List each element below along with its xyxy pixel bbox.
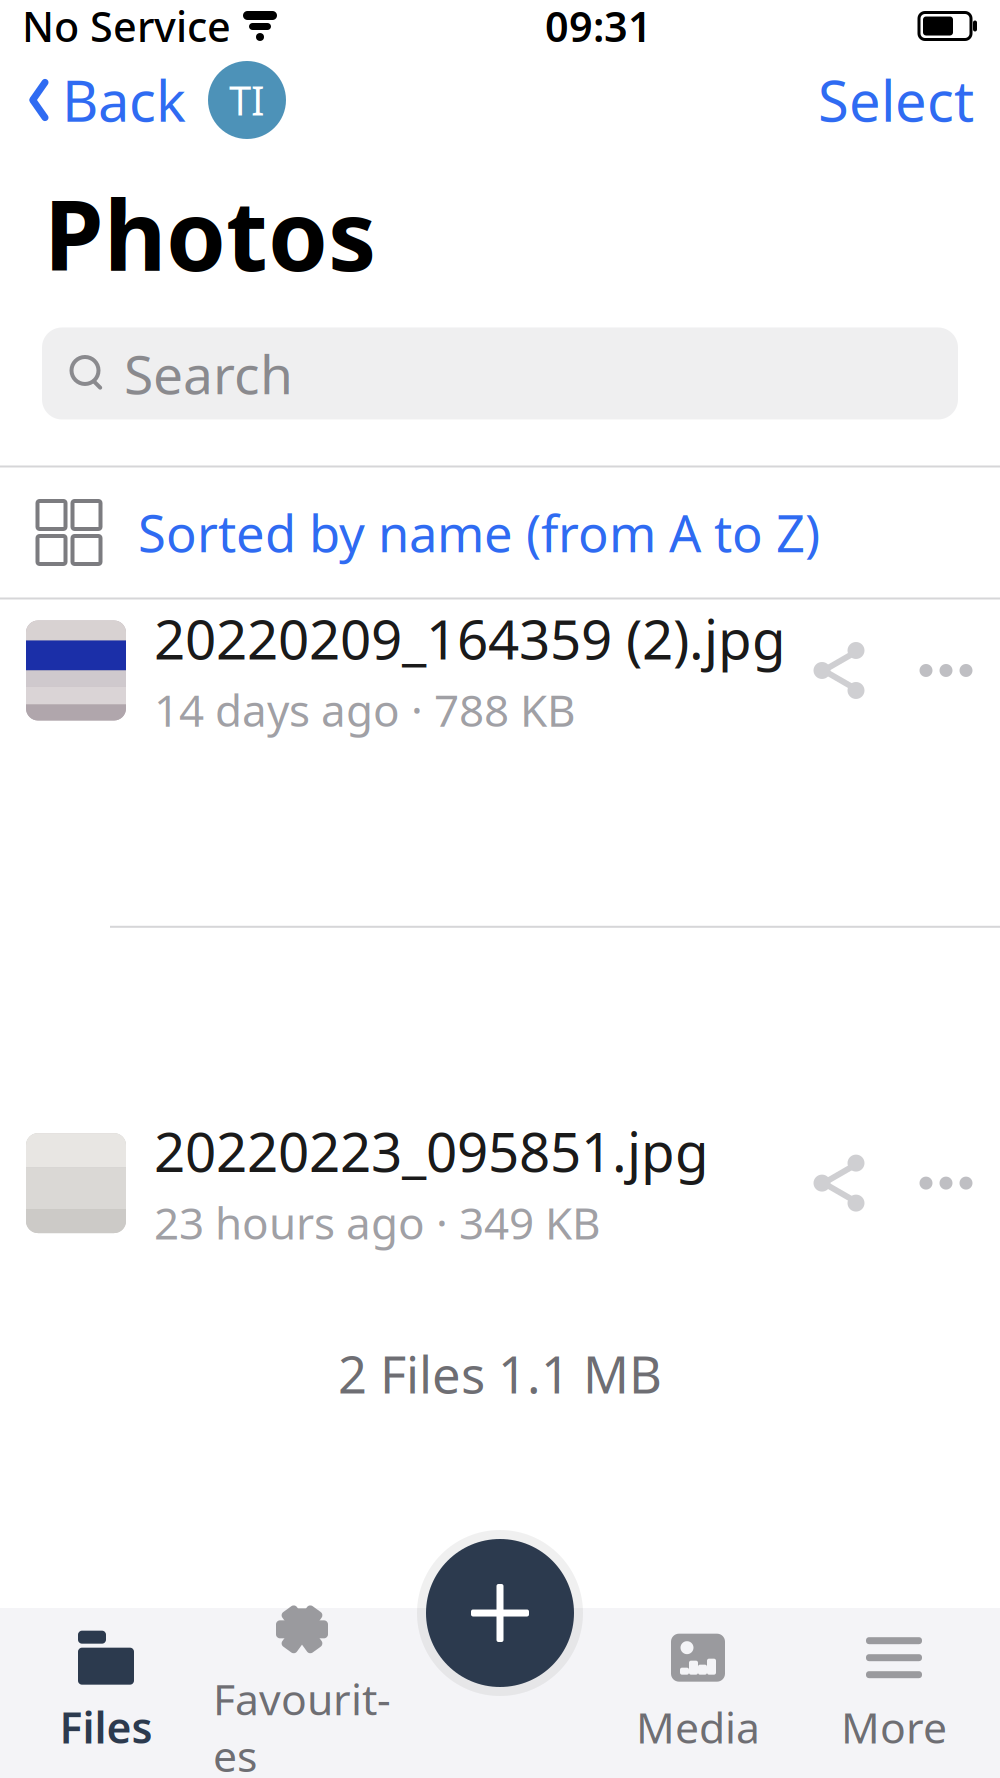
staticText: Sorted by name (from A to Z)	[138, 499, 820, 566]
staticText: TI	[229, 73, 265, 126]
staticText: 23 hours ago · 349 KB	[154, 1193, 601, 1252]
staticText: Files	[59, 1699, 152, 1755]
staticText: Back	[62, 63, 186, 137]
staticText: 09:31	[545, 0, 652, 53]
button[interactable]: 20220209_164359 (2).jpg	[0, 599, 1000, 741]
button[interactable]: More	[796, 1608, 992, 1778]
staticText: Photos	[44, 170, 376, 297]
staticText: 20220209_164359 (2).jpg	[154, 602, 786, 675]
button[interactable]: Select	[818, 55, 974, 145]
button[interactable]: Account	[208, 61, 286, 139]
staticText: Media	[636, 1699, 760, 1755]
staticText: More	[841, 1699, 947, 1755]
button[interactable]: Favourites	[204, 1608, 400, 1778]
button[interactable]: Back	[26, 55, 186, 145]
button[interactable]: Files	[8, 1608, 204, 1778]
staticText: 14 days ago · 788 KB	[154, 681, 576, 739]
staticText: 20220223_095851.jpg	[154, 1115, 709, 1187]
staticText: Select	[818, 63, 974, 137]
button[interactable]: Add	[415, 1528, 585, 1698]
button[interactable]: Change layout	[34, 497, 104, 567]
staticText: No Service	[22, 0, 231, 53]
button[interactable]: Sorted by name (from A to Z)	[138, 489, 820, 576]
button[interactable]: Media	[600, 1608, 796, 1778]
staticText: 2 Files 1.1 MB	[338, 1340, 662, 1407]
button[interactable]: 20220223_095851.jpg	[0, 1112, 1000, 1254]
button[interactable]: Search	[42, 327, 958, 419]
staticText: Favourites	[213, 1670, 391, 1778]
staticText: Search	[124, 338, 293, 409]
